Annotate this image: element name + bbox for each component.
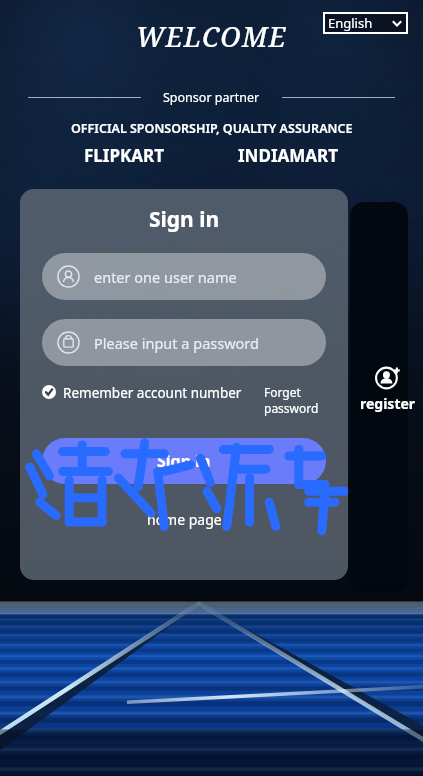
staticText: Forget password — [264, 384, 326, 416]
staticText: WELCOME — [136, 18, 287, 55]
other: Remember account number — [42, 385, 57, 399]
staticText: English — [328, 14, 391, 32]
staticText: Sign in — [157, 450, 211, 472]
staticText: home page — [147, 510, 222, 529]
staticText: Please input a password — [94, 333, 259, 353]
button[interactable]: Forget password — [264, 384, 326, 416]
button[interactable]: Remember account number — [42, 384, 254, 402]
staticText: register — [360, 394, 416, 413]
staticText: OFFICIAL SPONSORSHIP, QUALITY ASSURANCE — [71, 120, 353, 137]
staticText: enter one user name — [94, 267, 237, 287]
button[interactable]: Please input a password — [42, 319, 326, 366]
staticText: Sponsor partner — [163, 89, 260, 106]
button[interactable]: Register — [352, 362, 423, 416]
button[interactable]: enter one user name — [42, 253, 326, 300]
staticText: Sign in — [149, 205, 220, 234]
staticText: FLIPKART — [84, 144, 165, 167]
button[interactable]: English — [323, 12, 408, 34]
button[interactable]: home page — [143, 506, 226, 533]
other: Register — [375, 365, 401, 391]
staticText: Remember account number — [63, 384, 242, 402]
staticText: INDIAMART — [238, 144, 339, 167]
button[interactable]: Sign in — [42, 438, 326, 484]
